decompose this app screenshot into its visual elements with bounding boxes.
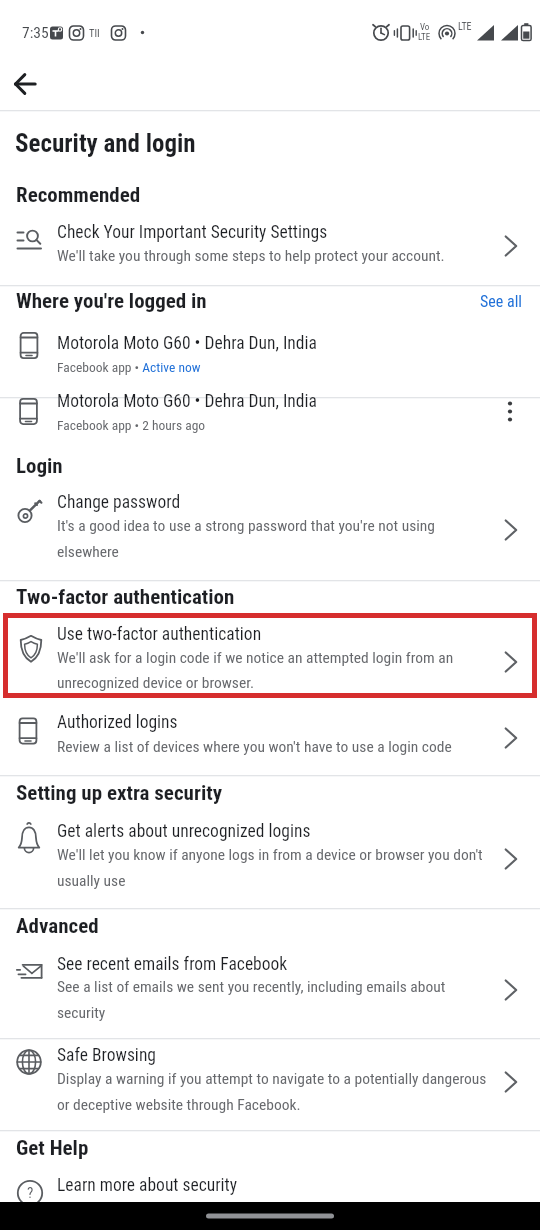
- staticText: We'll ask for a login code if we notice …: [57, 649, 454, 667]
- button[interactable]: [468, 288, 534, 318]
- staticText: We'll take you through some steps to hel…: [57, 247, 445, 265]
- staticText: Review a list of devices where you won't…: [57, 738, 452, 756]
- button[interactable]: [492, 394, 532, 430]
- staticText: 7:35: [22, 24, 49, 42]
- staticText: Security and login: [15, 129, 196, 158]
- button[interactable]: [0, 325, 540, 385]
- staticText: Get Help: [16, 1136, 89, 1161]
- staticText: We'll let you know if anyone logs in fro…: [57, 846, 483, 864]
- button[interactable]: [0, 815, 540, 899]
- staticText: LTE: [458, 21, 472, 33]
- staticText: Where you're logged in: [16, 289, 207, 314]
- staticText: Two-factor authentication: [16, 585, 235, 610]
- staticText: elsewhere: [57, 543, 119, 561]
- staticText: LTE: [418, 32, 431, 43]
- staticText: ?: [27, 1184, 34, 1202]
- staticText: See recent emails from Facebook: [57, 954, 288, 975]
- staticText: Get alerts about unrecognized logins: [57, 821, 311, 842]
- staticText: Check Your Important Security Settings: [57, 222, 328, 243]
- staticText: Facebook app • 2 hours ago: [57, 417, 206, 433]
- staticText: or deceptive website through Facebook.: [57, 1096, 301, 1114]
- button[interactable]: [0, 1168, 540, 1202]
- staticText: Learn more about security: [57, 1175, 238, 1196]
- staticText: Motorola Moto G60 • Dehra Dun, India: [57, 333, 317, 354]
- staticText: Recommended: [16, 183, 141, 208]
- staticText: Change password: [57, 492, 181, 513]
- staticText: See all: [480, 292, 522, 311]
- staticText: Vo: [420, 22, 430, 33]
- staticText: Advanced: [16, 914, 99, 939]
- button[interactable]: [0, 212, 540, 274]
- staticText: Facebook app • Active now: [57, 359, 201, 375]
- staticText: Use two-factor authentication: [57, 624, 262, 645]
- staticText: Setting up extra security: [16, 781, 223, 806]
- staticText: Safe Browsing: [57, 1045, 156, 1066]
- button[interactable]: [0, 946, 540, 1030]
- button[interactable]: [0, 486, 540, 570]
- staticText: Authorized logins: [57, 712, 178, 733]
- staticText: usually use: [57, 872, 126, 890]
- staticText: See a list of emails we sent you recentl…: [57, 978, 446, 996]
- button[interactable]: [0, 702, 540, 766]
- staticText: It's a good idea to use a strong passwor…: [57, 517, 435, 535]
- button[interactable]: [0, 390, 492, 446]
- staticText: Display a warning if you attempt to navi…: [57, 1070, 487, 1088]
- button[interactable]: [0, 1042, 540, 1122]
- staticText: security: [57, 1004, 106, 1022]
- staticText: Motorola Moto G60 • Dehra Dun, India: [57, 391, 317, 412]
- button[interactable]: [0, 618, 540, 694]
- staticText: TII: [89, 27, 100, 39]
- button[interactable]: [3, 62, 47, 106]
- staticText: Login: [16, 454, 63, 479]
- staticText: unrecognized device or browser.: [57, 674, 255, 692]
